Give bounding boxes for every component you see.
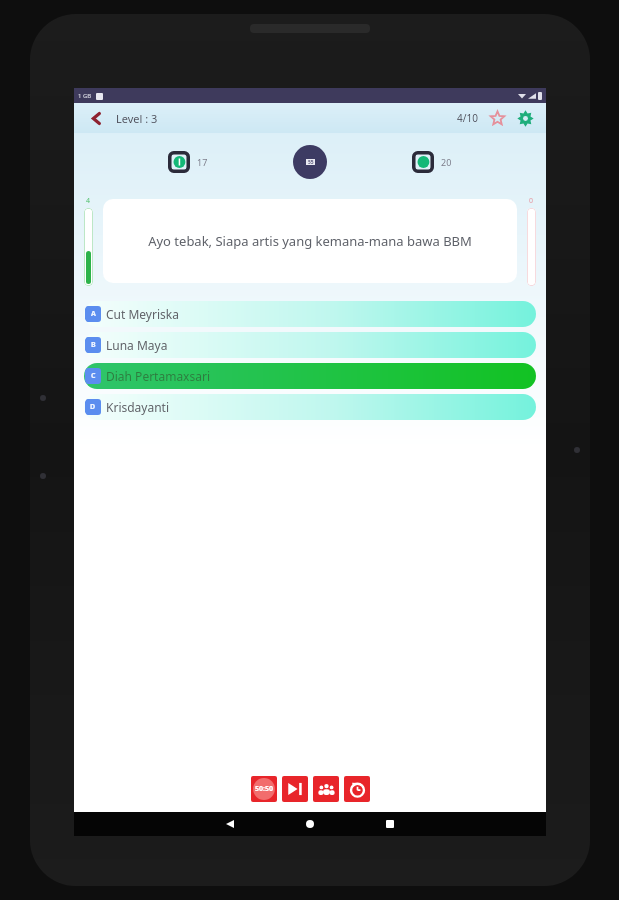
button[interactable]: Home — [298, 812, 322, 836]
staticText: D — [90, 402, 96, 412]
button[interactable]: Back — [84, 106, 108, 130]
button[interactable]: C — [84, 363, 536, 389]
button[interactable]: Recents — [378, 812, 402, 836]
staticText: B — [91, 340, 96, 350]
staticText: 55 — [308, 159, 314, 165]
staticText: Ayo tebak, Siapa artis yang kemana-mana … — [148, 232, 472, 250]
staticText: 4/10 — [457, 111, 478, 125]
button[interactable]: B — [84, 332, 536, 358]
button[interactable]: Coins — [168, 151, 208, 173]
button[interactable]: Timer — [293, 145, 327, 179]
button[interactable]: Back — [218, 812, 242, 836]
button[interactable]: Skip — [282, 776, 308, 802]
button[interactable]: A — [84, 301, 536, 327]
staticText: Cut Meyriska — [106, 306, 179, 322]
button[interactable]: Extra time — [344, 776, 370, 802]
button[interactable]: Ask audience — [313, 776, 339, 802]
button[interactable]: Settings — [514, 107, 536, 129]
staticText: C — [91, 371, 96, 381]
staticText: 1 GB — [78, 92, 92, 100]
staticText: A — [91, 309, 96, 319]
staticText: 0 — [529, 196, 534, 206]
staticText: Diah Pertamaxsari — [106, 368, 211, 384]
button[interactable]: Score — [412, 151, 452, 173]
staticText: Level : 3 — [116, 111, 158, 126]
staticText: 20 — [441, 156, 452, 168]
staticText: 50:50 — [255, 784, 273, 794]
staticText: Krisdayanti — [106, 399, 170, 415]
button[interactable]: Favourite — [486, 107, 508, 129]
button[interactable]: 5050 — [251, 776, 277, 802]
staticText: 4 — [86, 196, 91, 206]
staticText: Luna Maya — [106, 337, 168, 353]
button[interactable]: D — [84, 394, 536, 420]
staticText: 17 — [197, 156, 208, 168]
